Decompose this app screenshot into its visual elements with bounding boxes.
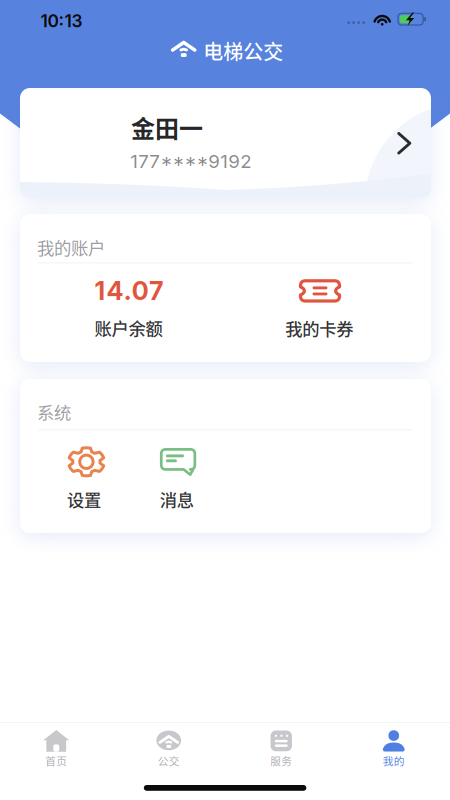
staticText: 公交	[158, 753, 180, 768]
button[interactable]: 设置	[38, 435, 131, 519]
button[interactable]: 首页	[0, 722, 112, 800]
staticText: 设置	[67, 487, 101, 512]
staticText: 14.07	[94, 275, 164, 306]
staticText: 系统	[37, 399, 71, 424]
staticText: 消息	[160, 487, 194, 512]
button[interactable]: 我的	[337, 722, 450, 800]
button[interactable]: 消息	[131, 435, 225, 519]
staticText: 177****9192	[130, 150, 251, 173]
button[interactable]: 我的卡券	[225, 270, 412, 350]
staticText: 我的	[383, 753, 405, 768]
button[interactable]: 公交	[112, 722, 225, 800]
staticText: 我的卡券	[285, 316, 353, 341]
staticText: 金田一	[131, 110, 203, 145]
staticText: 账户余额	[94, 315, 162, 340]
button[interactable]: 金田一	[20, 88, 431, 198]
staticText: 首页	[45, 753, 67, 768]
staticText: 10:13	[41, 10, 83, 31]
button[interactable]: 服务	[225, 722, 337, 800]
staticText: 服务	[270, 753, 292, 768]
button[interactable]: 14.07	[38, 270, 225, 350]
staticText: 我的账户	[37, 235, 105, 260]
staticText: 电梯公交	[203, 36, 283, 65]
